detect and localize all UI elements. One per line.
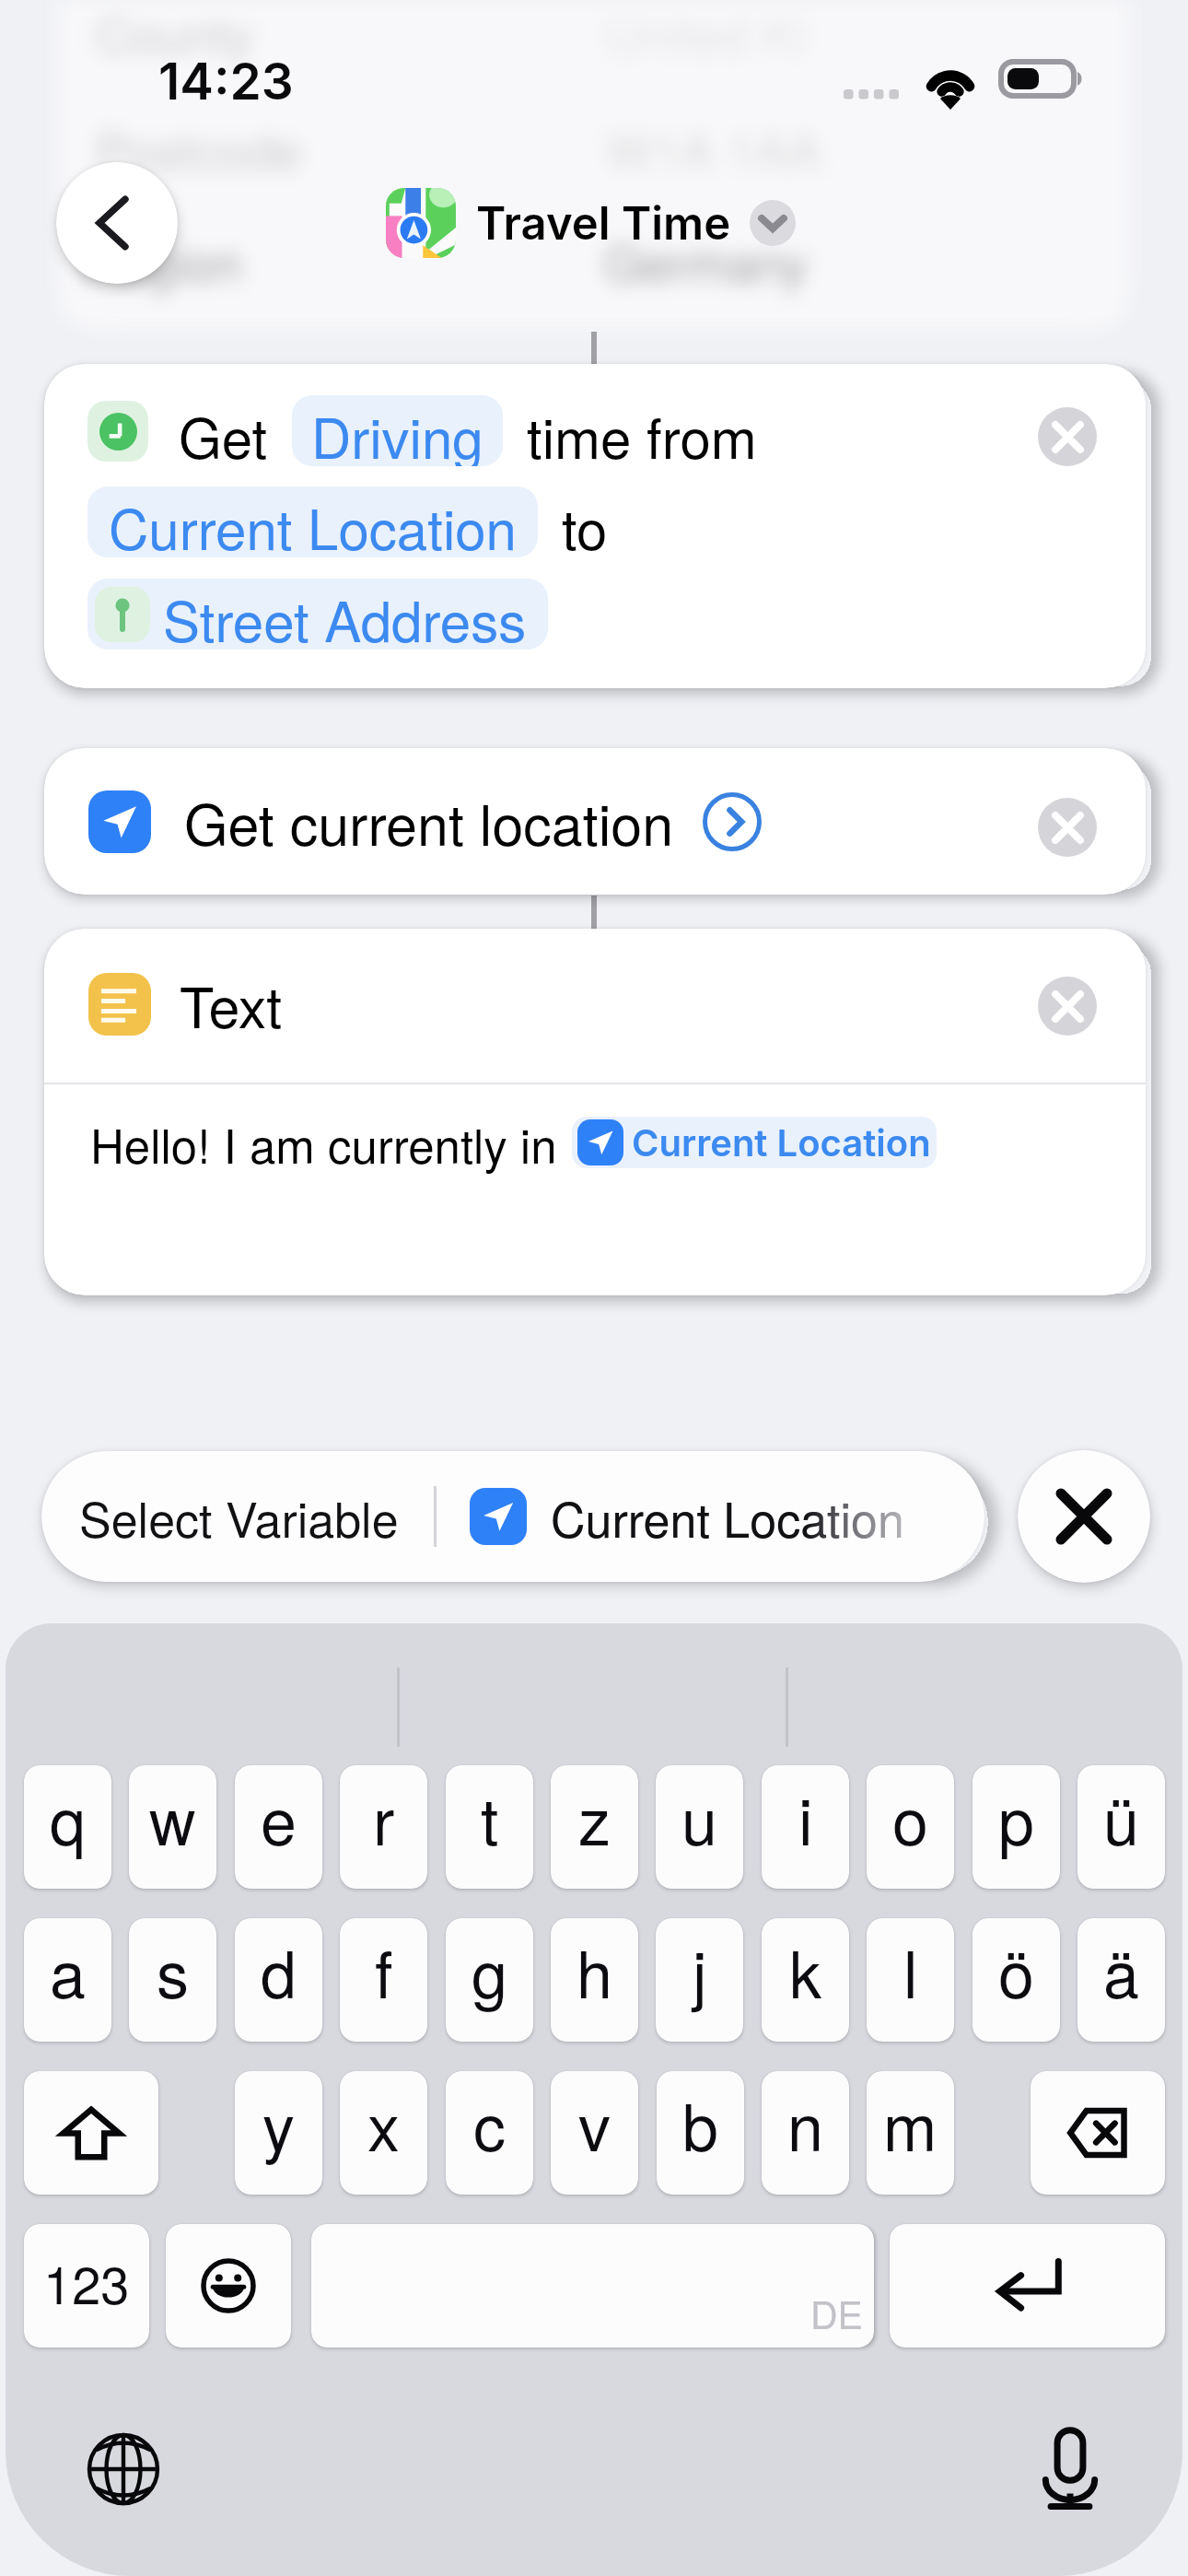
- button[interactable]: r: [340, 1765, 427, 1889]
- button[interactable]: z: [551, 1765, 638, 1889]
- button[interactable]: x: [340, 2071, 427, 2195]
- staticText: x: [367, 2078, 400, 2170]
- staticText: Current Location: [551, 1482, 904, 1551]
- staticText: o: [892, 1772, 928, 1864]
- staticText: d: [261, 1925, 297, 2017]
- button[interactable]: Change keyboard: [72, 2418, 175, 2521]
- staticText: f: [375, 1925, 393, 2017]
- staticText: Get current location: [184, 781, 674, 861]
- staticText: Hello! I am currently in: [90, 1109, 557, 1177]
- button[interactable]: Emoji: [166, 2224, 291, 2348]
- button[interactable]: b: [657, 2071, 744, 2195]
- staticText: Street Address: [163, 579, 527, 650]
- staticText: c: [473, 2078, 506, 2170]
- staticText: ö: [998, 1925, 1034, 2017]
- button[interactable]: Get: [44, 364, 1146, 688]
- button[interactable]: m: [867, 2071, 954, 2195]
- button[interactable]: Return: [890, 2224, 1165, 2348]
- button[interactable]: l: [867, 1918, 954, 2042]
- staticText: DE: [810, 2286, 863, 2340]
- staticText: time from: [527, 395, 757, 466]
- staticText: r: [373, 1772, 395, 1864]
- staticText: g: [472, 1925, 507, 2017]
- staticText: b: [682, 2078, 718, 2170]
- button[interactable]: Dictation: [1019, 2418, 1122, 2521]
- button[interactable]: ö: [973, 1918, 1060, 2042]
- staticText: j: [693, 1925, 707, 2017]
- button[interactable]: Select Variable: [41, 1451, 984, 1582]
- staticText: w: [149, 1772, 196, 1864]
- button[interactable]: e: [235, 1765, 322, 1889]
- button[interactable]: Shift: [24, 2071, 158, 2195]
- staticText: z: [578, 1772, 611, 1864]
- button[interactable]: o: [867, 1765, 954, 1889]
- staticText: e: [261, 1772, 297, 1864]
- button[interactable]: u: [656, 1765, 743, 1889]
- button[interactable]: n: [762, 2071, 849, 2195]
- button[interactable]: v: [551, 2071, 638, 2195]
- staticText: Postcode: [96, 112, 302, 183]
- staticText: W1A 1AA: [606, 112, 822, 183]
- staticText: m: [883, 2078, 938, 2170]
- staticText: Get: [179, 395, 268, 466]
- button[interactable]: j: [656, 1918, 743, 2042]
- staticText: q: [50, 1772, 86, 1864]
- button[interactable]: Get current location: [44, 748, 1146, 895]
- button[interactable]: q: [24, 1765, 111, 1889]
- button[interactable]: p: [973, 1765, 1060, 1889]
- staticText: ü: [1103, 1772, 1139, 1864]
- staticText: Current Location: [109, 486, 517, 557]
- staticText: v: [578, 2078, 611, 2170]
- button[interactable]: a: [24, 1918, 111, 2042]
- staticText: k: [789, 1925, 821, 2017]
- staticText: p: [998, 1772, 1034, 1864]
- button[interactable]: Travel Time: [386, 188, 796, 258]
- staticText: Germany: [604, 225, 808, 296]
- staticText: n: [787, 2078, 823, 2170]
- button[interactable]: Close: [1018, 1450, 1150, 1583]
- button[interactable]: s: [129, 1918, 216, 2042]
- staticText: County: [96, 0, 254, 67]
- button[interactable]: Remove action: [1038, 407, 1097, 466]
- staticText: Driving: [311, 395, 483, 466]
- button[interactable]: Remove action: [1038, 798, 1097, 857]
- staticText: s: [157, 1925, 189, 2017]
- button[interactable]: d: [235, 1918, 322, 2042]
- button[interactable]: c: [446, 2071, 533, 2195]
- button[interactable]: Remove action: [1038, 977, 1097, 1036]
- staticText: Text: [180, 964, 283, 1044]
- staticText: Travel Time: [476, 196, 731, 251]
- staticText: 123: [43, 2245, 130, 2319]
- staticText: Current Location: [632, 1120, 931, 1165]
- button[interactable]: ä: [1077, 1918, 1165, 2042]
- staticText: h: [577, 1925, 612, 2017]
- button[interactable]: Back: [56, 162, 178, 284]
- staticText: i: [798, 1772, 813, 1864]
- staticText: a: [50, 1925, 86, 2017]
- staticText: y: [262, 2078, 295, 2170]
- button[interactable]: t: [446, 1765, 533, 1889]
- button[interactable]: Space: [311, 2224, 874, 2348]
- staticText: Select Variable: [79, 1482, 399, 1551]
- button[interactable]: Backspace: [1031, 2071, 1165, 2195]
- button[interactable]: Text: [44, 929, 1146, 1295]
- button[interactable]: 123: [24, 2224, 149, 2348]
- button[interactable]: g: [446, 1918, 533, 2042]
- staticText: ä: [1103, 1925, 1139, 2017]
- button[interactable]: y: [235, 2071, 322, 2195]
- button[interactable]: ü: [1077, 1765, 1165, 1889]
- button[interactable]: k: [762, 1918, 849, 2042]
- staticText: to: [562, 486, 608, 557]
- staticText: Region: [85, 225, 242, 296]
- button[interactable]: w: [129, 1765, 216, 1889]
- button[interactable]: i: [762, 1765, 849, 1889]
- staticText: u: [681, 1772, 717, 1864]
- button[interactable]: h: [551, 1918, 638, 2042]
- staticText: t: [481, 1772, 499, 1864]
- staticText: 14:23: [158, 51, 294, 112]
- staticText: l: [903, 1925, 918, 2017]
- button[interactable]: f: [340, 1918, 427, 2042]
